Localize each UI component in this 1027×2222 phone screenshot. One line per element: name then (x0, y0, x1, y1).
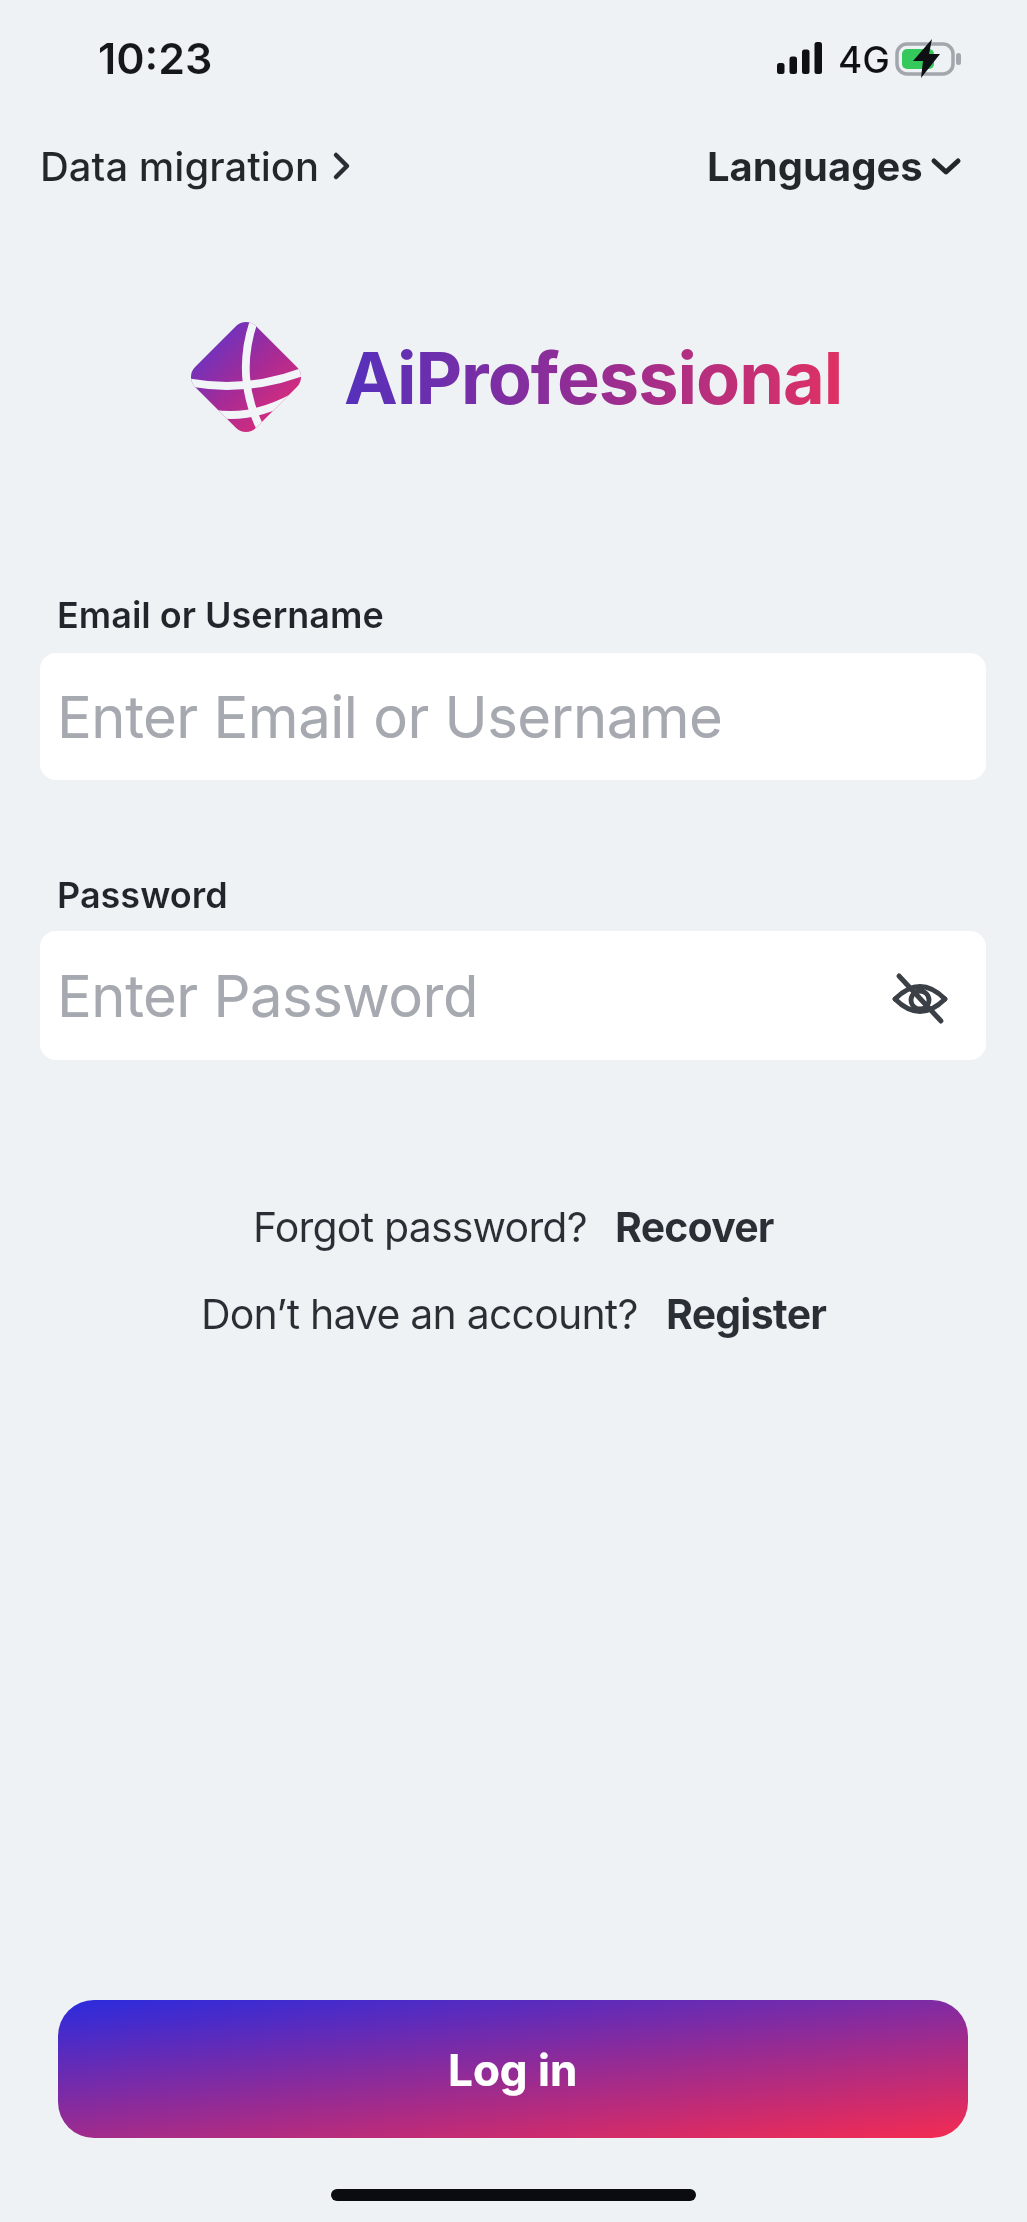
staticText: Don’t have an account? (201, 1289, 638, 1339)
staticText: Recover (615, 1202, 774, 1252)
button[interactable]: Data migration (40, 142, 352, 190)
button[interactable]: Register (666, 1289, 827, 1339)
button[interactable]: Log in (58, 2000, 968, 2138)
staticText: Enter Password (57, 961, 478, 1031)
staticText: Enter Email or Username (57, 682, 723, 752)
staticText: Register (666, 1289, 827, 1339)
staticText: Email or Username (57, 593, 384, 637)
button[interactable]: Recover (615, 1202, 774, 1252)
staticText: Password (57, 873, 228, 917)
staticText: Data migration (40, 142, 320, 190)
staticText: Languages (707, 142, 923, 190)
button[interactable]: Enter Email or Username (40, 653, 986, 780)
button[interactable]: Languages (707, 142, 961, 190)
staticText: Log in (448, 2043, 578, 2096)
button[interactable]: Enter Password (40, 931, 986, 1060)
staticText: 10:23 (98, 32, 213, 84)
staticText: AiProfessional (344, 334, 843, 421)
button[interactable] (892, 972, 948, 1024)
staticText: 4G (838, 37, 890, 82)
staticText: Forgot password? (253, 1202, 587, 1252)
